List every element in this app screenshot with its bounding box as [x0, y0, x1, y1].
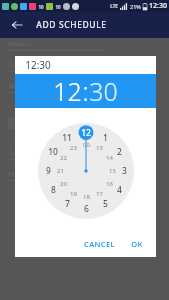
staticText: 12:30 [25, 58, 51, 72]
staticText: OK [131, 239, 143, 249]
staticText: 19 [70, 190, 77, 198]
staticText: 12 [53, 74, 82, 108]
staticText: LTE [110, 3, 118, 9]
staticText: 2 [117, 146, 122, 158]
staticText: 3 [122, 165, 127, 177]
staticText: 6 [84, 203, 89, 215]
staticText: ADD SCHEDULE [36, 19, 107, 31]
staticText: 10 [48, 146, 58, 158]
staticText: 20 [60, 180, 67, 188]
staticText: 15 [109, 167, 116, 175]
staticText: 16 [106, 180, 113, 188]
staticText: 5 [103, 198, 108, 210]
staticText: 23 [70, 144, 77, 152]
button[interactable]: 30 [89, 74, 118, 108]
staticText: CANCEL [84, 239, 115, 249]
staticText: 21 [57, 167, 64, 175]
staticText: 1 [103, 132, 108, 144]
staticText: Start [8, 149, 22, 157]
staticText: 14 [106, 154, 113, 162]
button[interactable]: OK [126, 236, 148, 252]
staticText: 22 [60, 154, 67, 162]
staticText: 10 [38, 4, 44, 10]
staticText: 12 [81, 127, 91, 139]
staticText: Address [8, 40, 31, 48]
staticText: 4 [117, 184, 122, 196]
staticText: 9 [46, 165, 51, 177]
staticText: 8 [51, 184, 56, 196]
button[interactable]: CANCEL [79, 236, 120, 252]
staticText: End [8, 170, 19, 178]
staticText: 30 [89, 74, 118, 108]
staticText: 10 [55, 4, 61, 10]
staticText: Rule type [8, 82, 35, 90]
staticText: Rule name [8, 61, 39, 69]
staticText: 18 [83, 193, 90, 201]
staticText: : [82, 74, 89, 108]
button[interactable]: 12 [53, 74, 82, 108]
staticText: 11 [62, 132, 72, 144]
staticText: 7 [65, 198, 70, 210]
staticText: 13 [96, 144, 103, 152]
staticText: 17 [96, 190, 103, 198]
button[interactable]: Back [6, 14, 28, 36]
staticText: 00 [83, 141, 90, 149]
staticText: 12:30 [149, 1, 167, 11]
staticText: 21% [130, 3, 141, 10]
